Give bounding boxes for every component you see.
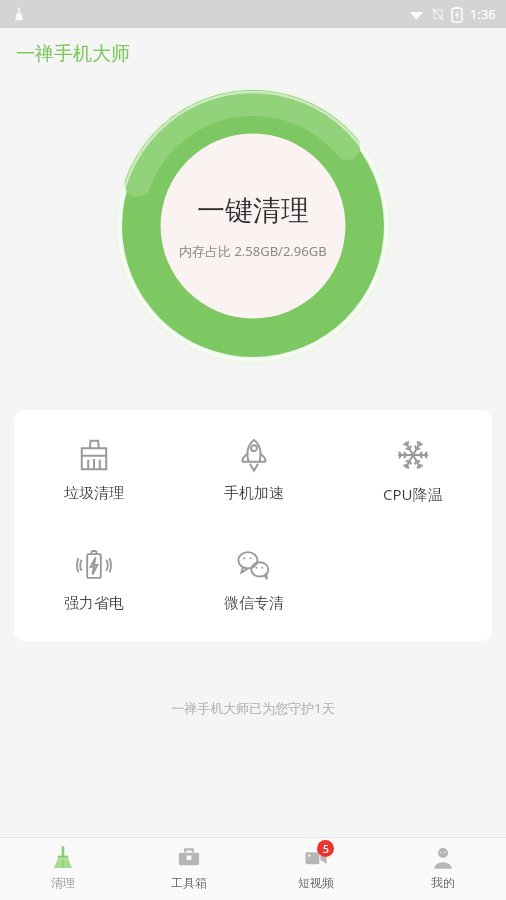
staticText: 手机加速 [224, 484, 284, 503]
staticText: 工具箱 [171, 875, 207, 890]
staticText: CPU降温 [383, 484, 443, 504]
button[interactable]: 5 [252, 838, 379, 890]
button[interactable]: 强力省电 [14, 546, 174, 615]
staticText: 清理 [51, 875, 75, 890]
staticText: 一禅手机大师已为您守护1天 [171, 699, 335, 717]
button[interactable]: 一键清理 [114, 87, 392, 365]
button[interactable]: 我的 [379, 838, 506, 890]
staticText: 微信专清 [224, 594, 284, 613]
button[interactable]: 清理 [0, 838, 126, 890]
button[interactable]: 垃圾清理 [14, 436, 174, 505]
staticText: 5 [323, 842, 329, 856]
button[interactable]: 微信专清 [174, 546, 333, 615]
staticText: 我的 [431, 875, 455, 890]
staticText: 一禅手机大师 [16, 42, 130, 66]
staticText: 一键清理 [197, 193, 309, 228]
staticText: 1:36 [470, 5, 496, 23]
staticText: 短视频 [298, 875, 334, 890]
button[interactable]: 手机加速 [174, 436, 333, 505]
staticText: 强力省电 [64, 594, 124, 613]
button[interactable]: 工具箱 [126, 838, 252, 890]
button[interactable]: CPU降温 [333, 436, 492, 506]
staticText: 内存占比 2.58GB/2.96GB [179, 242, 327, 260]
staticText: 垃圾清理 [64, 484, 124, 503]
